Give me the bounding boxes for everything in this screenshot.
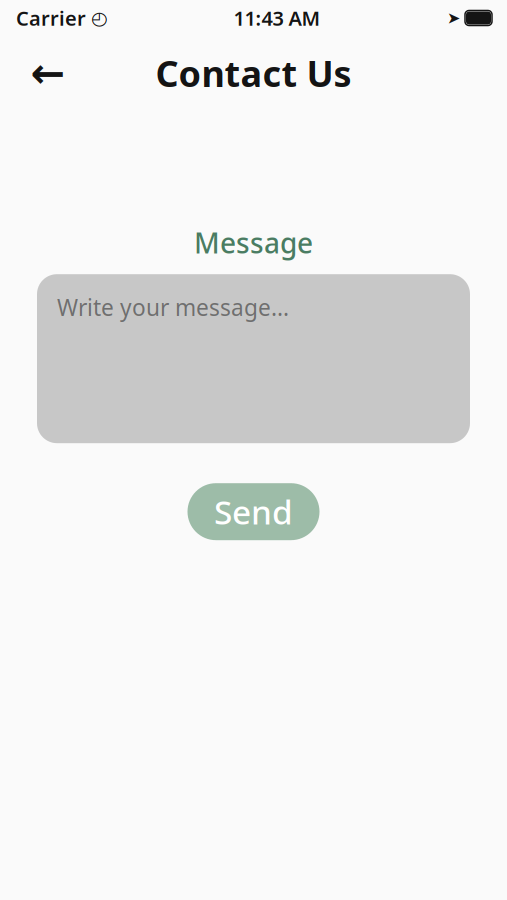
staticText: Carrier: [16, 5, 86, 31]
staticText: Write your message...: [57, 292, 289, 322]
staticText: Send: [214, 490, 293, 534]
staticText: ◴: [91, 7, 107, 29]
button[interactable]: Back: [22, 47, 74, 99]
staticText: 11:43 AM: [233, 5, 320, 31]
button[interactable]: Send: [187, 483, 319, 540]
staticText: ←: [30, 49, 65, 96]
staticText: Message: [194, 224, 313, 261]
staticText: Contact Us: [155, 49, 351, 97]
button[interactable]: Write your message: [37, 274, 470, 443]
staticText: ➤: [447, 9, 460, 27]
